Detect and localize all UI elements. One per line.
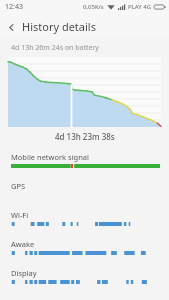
button[interactable]: Awake	[0, 237, 169, 266]
staticText: 4d 13h 23m 38s	[55, 131, 115, 142]
button[interactable]: GPS	[0, 179, 169, 208]
button[interactable]: Mobile network signal	[0, 150, 169, 179]
staticText: Wi-Fi	[11, 210, 29, 220]
staticText: Display	[11, 268, 37, 278]
staticText: PLAY 4G	[128, 3, 152, 11]
staticText: 12:43	[5, 2, 23, 12]
staticText: Awake	[11, 239, 35, 249]
button[interactable]: Display	[0, 266, 169, 295]
staticText: Mobile network signal	[11, 152, 89, 162]
button[interactable]: Back	[0, 16, 22, 38]
staticText: 4d 13h 26m 24s on battery	[11, 43, 99, 53]
staticText: GPS	[11, 181, 26, 191]
staticText: 0,05K/s	[83, 3, 104, 11]
button[interactable]: Wi-Fi	[0, 208, 169, 237]
staticText: History details	[22, 19, 96, 34]
